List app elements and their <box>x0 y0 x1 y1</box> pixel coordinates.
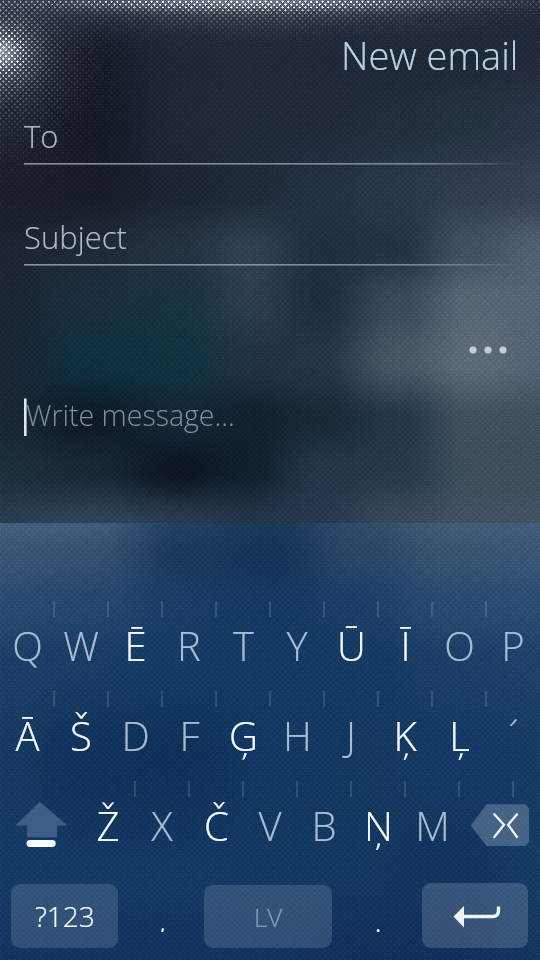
button[interactable]: , <box>135 900 189 932</box>
staticText: Ī <box>400 618 411 672</box>
button[interactable]: Ē <box>108 601 162 689</box>
button[interactable]: H <box>270 691 324 779</box>
staticText: . <box>374 900 382 932</box>
staticText: Ē <box>124 618 147 672</box>
staticText: D <box>121 708 150 762</box>
button[interactable]: Ķ <box>378 691 432 779</box>
button[interactable]: Ģ <box>216 691 270 779</box>
staticText: Ū <box>337 618 366 672</box>
staticText: Ļ <box>449 708 470 762</box>
staticText: ?123 <box>35 897 95 935</box>
button[interactable]: Ī <box>378 601 432 689</box>
button[interactable]: Š <box>54 691 108 779</box>
staticText: , <box>159 900 166 932</box>
button[interactable]: Shift <box>12 797 68 851</box>
staticText: V <box>258 798 282 852</box>
staticText: Ķ <box>393 708 417 762</box>
staticText: Ž <box>96 798 120 852</box>
button[interactable]: Y <box>270 601 324 689</box>
staticText: H <box>283 708 312 762</box>
staticText: To <box>24 115 59 157</box>
staticText: M <box>415 798 450 852</box>
button[interactable]: M <box>405 781 459 869</box>
button[interactable]: To <box>0 108 540 166</box>
staticText: F <box>179 708 200 762</box>
staticText: W <box>63 618 99 672</box>
button[interactable]: Ņ <box>351 781 405 869</box>
button[interactable]: LV <box>204 885 332 948</box>
staticText: Write message... <box>26 396 235 435</box>
button[interactable]: . <box>351 900 405 932</box>
button[interactable]: B <box>297 781 351 869</box>
staticText: Subject <box>24 216 127 258</box>
button[interactable]: Backspace <box>464 799 532 854</box>
staticText: LV <box>254 899 283 934</box>
staticText: X <box>151 798 173 852</box>
staticText: T <box>233 618 254 672</box>
staticText: Ņ <box>364 798 393 852</box>
button[interactable]: X <box>135 781 189 869</box>
button[interactable]: D <box>108 691 162 779</box>
button[interactable]: P <box>486 601 540 689</box>
button[interactable]: T <box>216 601 270 689</box>
button[interactable]: R <box>162 601 216 689</box>
button[interactable]: ´ <box>486 691 540 779</box>
staticText: ´ <box>508 708 519 762</box>
staticText: New email <box>341 29 519 81</box>
staticText: Č <box>204 798 229 852</box>
button[interactable]: Č <box>189 781 243 869</box>
button[interactable]: F <box>162 691 216 779</box>
staticText: Ģ <box>229 708 258 762</box>
button[interactable]: Ū <box>324 601 378 689</box>
staticText: Š <box>70 708 92 762</box>
button[interactable]: W <box>54 601 108 689</box>
staticText: Y <box>286 618 308 672</box>
button[interactable]: Write message... <box>0 393 540 443</box>
button[interactable]: Q <box>0 601 54 689</box>
staticText: Q <box>12 618 43 672</box>
button[interactable]: Subject <box>0 209 540 267</box>
staticText: J <box>346 708 356 762</box>
staticText: R <box>177 618 201 672</box>
button[interactable]: O <box>432 601 486 689</box>
button[interactable]: Ž <box>81 781 135 869</box>
button[interactable]: V <box>243 781 297 869</box>
button[interactable]: ?123 <box>11 884 118 948</box>
button[interactable]: Enter <box>422 883 528 948</box>
staticText: Ā <box>15 708 40 762</box>
staticText: P <box>501 618 525 672</box>
staticText: O <box>444 618 475 672</box>
button[interactable]: New email <box>0 0 540 112</box>
staticText: B <box>311 798 337 852</box>
button[interactable]: Ā <box>0 691 54 779</box>
button[interactable]: J <box>324 691 378 779</box>
button[interactable]: Ļ <box>432 691 486 779</box>
